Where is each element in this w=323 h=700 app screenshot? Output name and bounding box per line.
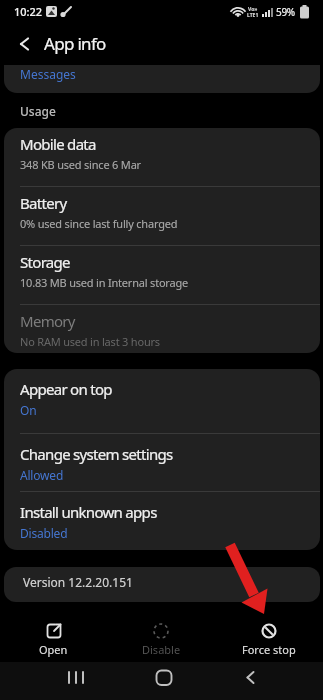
button[interactable]: Change system settings	[4, 434, 320, 491]
button[interactable]: Install unknown apps	[4, 492, 320, 550]
staticText: Force stop	[242, 642, 296, 657]
button[interactable]	[107, 662, 215, 700]
staticText: Version 12.2.20.151	[23, 574, 133, 590]
staticText: Open	[39, 642, 68, 657]
button[interactable]: Appear on top	[4, 369, 320, 433]
staticText: Disable	[142, 642, 181, 657]
button[interactable]	[215, 662, 323, 700]
staticText: Mobile data	[20, 134, 96, 154]
staticText: Allowed	[20, 467, 64, 483]
staticText: 10:22	[14, 4, 43, 19]
staticText: LTE1	[247, 12, 259, 19]
staticText: Change system settings	[20, 444, 173, 464]
button[interactable]: Battery	[4, 187, 320, 245]
button[interactable]	[0, 662, 107, 700]
staticText: Battery	[20, 193, 67, 213]
staticText: 348 KB used since 6 Mar	[20, 157, 141, 172]
button[interactable]: Disable	[107, 606, 215, 662]
staticText: Memory	[20, 311, 75, 331]
button[interactable]: Mobile data	[4, 128, 320, 186]
button[interactable]: Memory	[4, 305, 320, 353]
staticText: Appear on top	[20, 379, 112, 399]
button[interactable]: Storage	[4, 246, 320, 304]
staticText: No RAM used in last 3 hours	[20, 334, 160, 349]
staticText: 0% used since last fully charged	[20, 216, 178, 231]
staticText: Disabled	[20, 525, 68, 541]
staticText: Storage	[20, 252, 70, 272]
staticText: Vo»	[248, 6, 258, 13]
staticText: Messages	[20, 66, 76, 82]
staticText: Usage	[20, 103, 56, 119]
staticText: On	[20, 402, 37, 418]
staticText: Install unknown apps	[20, 502, 157, 522]
button[interactable]: Open	[0, 606, 107, 662]
staticText: App info	[44, 32, 106, 55]
button[interactable]: Force stop	[215, 606, 323, 662]
staticText: 10.83 MB used in Internal storage	[20, 275, 189, 290]
staticText: 59%	[276, 5, 295, 19]
button[interactable]	[0, 24, 40, 62]
button[interactable]: Messages	[4, 65, 320, 93]
